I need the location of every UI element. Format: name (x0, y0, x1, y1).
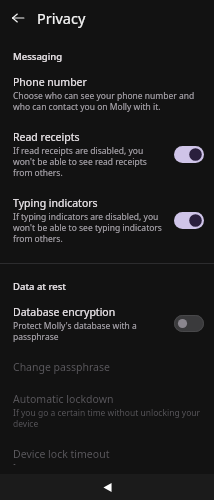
other: On (174, 212, 204, 229)
button[interactable]: Device lock timeout (0, 438, 214, 474)
button[interactable]: Back (5, 5, 31, 31)
staticText: If read receipts are disabled, you won't… (13, 145, 166, 178)
button[interactable]: Back (96, 476, 118, 498)
staticText: Automatic lockdown (13, 392, 114, 406)
staticText: If you go a certain time without unlocki… (13, 407, 201, 429)
button[interactable]: Phone number (0, 66, 214, 121)
button[interactable]: Read receipts (0, 121, 214, 187)
other: Off (174, 315, 204, 332)
staticText: Protect Molly's database with a passphra… (13, 320, 166, 342)
staticText: Change passphrase (13, 360, 110, 374)
button[interactable]: Database encryption (0, 296, 214, 351)
button[interactable]: Change passphrase (0, 351, 214, 383)
staticText: If typing indicators are disabled, you w… (13, 211, 166, 244)
staticText: Data at rest (13, 280, 67, 293)
staticText: Choose who can see your phone number and… (13, 90, 201, 112)
staticText: Device lock timeout (13, 447, 110, 461)
staticText: Messaging (13, 50, 63, 63)
staticText: Database encryption (13, 305, 116, 319)
staticText: Typing indicators (13, 196, 98, 210)
staticText: Read receipts (13, 130, 80, 144)
staticText: Phone number (13, 75, 87, 89)
staticText: Privacy (37, 8, 86, 28)
other: On (174, 146, 204, 163)
staticText: Instant (13, 462, 42, 465)
button[interactable]: Typing indicators (0, 187, 214, 253)
button[interactable]: Automatic lockdown (0, 383, 214, 438)
